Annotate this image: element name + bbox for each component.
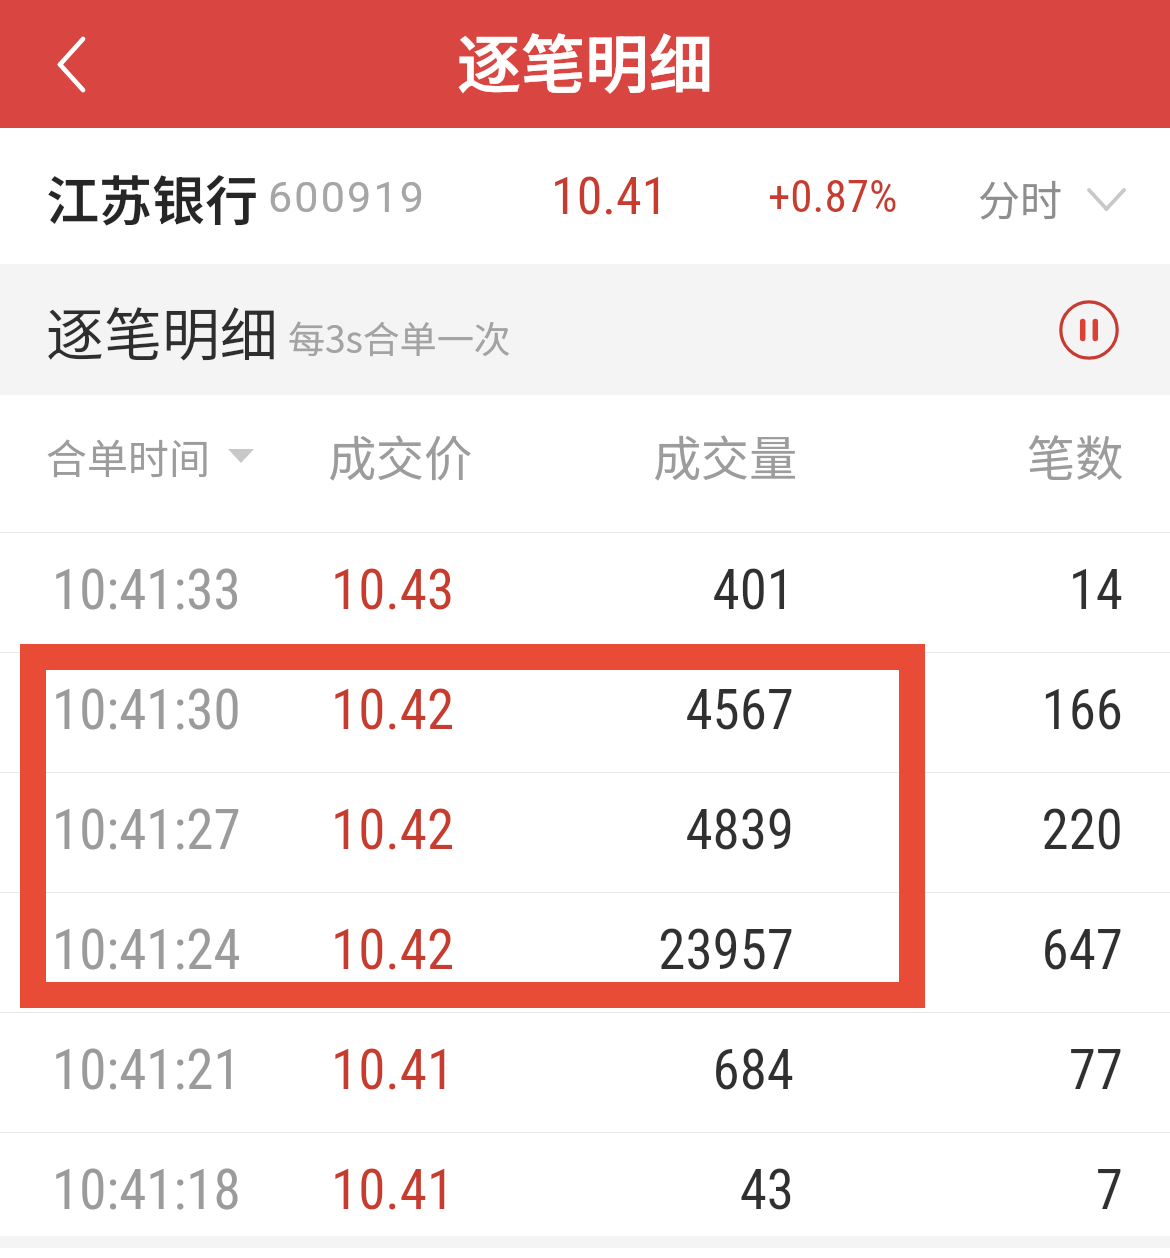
staticText: 401 [394, 558, 794, 622]
staticText: +0.87% [768, 170, 898, 223]
staticText: 分时 [978, 167, 1063, 228]
staticText: 逐笔明细 [457, 14, 713, 107]
staticText: 成交价 [328, 420, 473, 490]
staticText: 合单时间 [46, 426, 210, 485]
staticText: 10:41:24 [52, 918, 241, 982]
staticText: 220 [823, 798, 1123, 862]
staticText: 684 [394, 1038, 794, 1102]
button[interactable]: 10:41:27 [0, 773, 1170, 893]
staticText: 10:41:30 [52, 678, 241, 742]
staticText: 10.43 [331, 558, 455, 622]
staticText: 647 [823, 918, 1123, 982]
button[interactable]: 分时 [978, 128, 1126, 264]
staticText: 166 [823, 678, 1123, 742]
staticText: 10.42 [331, 678, 455, 742]
button[interactable]: Pause [1043, 284, 1135, 376]
button[interactable]: 10:41:21 [0, 1013, 1170, 1133]
staticText: 43 [394, 1158, 794, 1222]
button[interactable]: 合单时间 [46, 426, 254, 485]
staticText: 10.41 [331, 1158, 455, 1222]
button[interactable]: 10:41:33 [0, 533, 1170, 653]
staticText: 10:41:21 [52, 1038, 241, 1102]
button[interactable]: Back [0, 0, 140, 128]
staticText: 江苏银行 [46, 159, 258, 236]
staticText: 14 [823, 558, 1123, 622]
button[interactable]: 10:41:24 [0, 893, 1170, 1013]
staticText: 10:41:27 [52, 798, 241, 862]
staticText: 77 [823, 1038, 1123, 1102]
staticText: 成交量 [653, 420, 798, 490]
staticText: 600919 [268, 172, 427, 222]
staticText: 4839 [394, 798, 794, 862]
staticText: 10.42 [331, 918, 455, 982]
staticText: 10.41 [331, 1038, 455, 1102]
staticText: 10:41:18 [52, 1158, 241, 1222]
button[interactable]: 10:41:30 [0, 653, 1170, 773]
staticText: 7 [823, 1158, 1123, 1222]
staticText: 10.42 [331, 798, 455, 862]
button[interactable]: 10:41:18 [0, 1133, 1170, 1253]
staticText: 10.41 [551, 166, 668, 227]
staticText: 逐笔明细 [46, 289, 279, 373]
staticText: 10:41:33 [52, 558, 241, 622]
staticText: 笔数 [1027, 420, 1124, 490]
staticText: 每3s合单一次 [288, 310, 511, 364]
staticText: 4567 [394, 678, 794, 742]
staticText: 23957 [394, 918, 794, 982]
